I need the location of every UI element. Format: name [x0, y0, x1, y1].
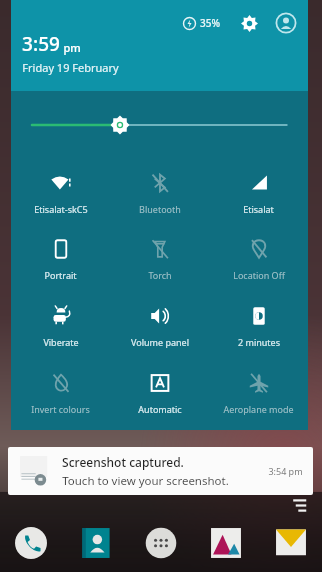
button[interactable]: Battery 35 percent charging: [181, 14, 222, 32]
staticText: Etisalat: [243, 203, 274, 215]
staticText: Viberate: [43, 336, 79, 348]
staticText: Screenshot captured.: [62, 454, 184, 470]
button[interactable]: Viberate: [11, 292, 110, 359]
staticText: 2 minutes: [238, 336, 280, 348]
button[interactable]: Phone: [10, 522, 52, 564]
button[interactable]: Portrait: [11, 225, 110, 292]
button[interactable]: Clear all notifications: [288, 495, 310, 515]
button[interactable]: Torch: [110, 225, 209, 292]
staticText: Aeroplane mode: [223, 403, 294, 415]
staticText: 35%: [200, 16, 220, 30]
staticText: Etisalat-skC5: [34, 203, 88, 215]
staticText: 3:54 pm: [268, 465, 303, 477]
button[interactable]: Invert colours: [11, 359, 110, 426]
button[interactable]: 2 minutes: [209, 292, 308, 359]
staticText: Friday 19 February: [22, 60, 119, 75]
staticText: Torch: [148, 269, 172, 281]
button[interactable]: Settings: [238, 12, 260, 34]
button[interactable]: Etisalat-skC5: [11, 159, 110, 225]
staticText: 3:59: [22, 31, 60, 57]
staticText: Portrait: [44, 269, 77, 281]
button[interactable]: Contacts: [75, 522, 117, 564]
button[interactable]: Brightness: [11, 91, 308, 159]
staticText: pm: [63, 40, 81, 55]
button[interactable]: Gallery: [205, 522, 247, 564]
button[interactable]: Automatic: [110, 359, 209, 426]
button[interactable]: Email: [270, 522, 312, 564]
button[interactable]: 3:59: [22, 31, 119, 75]
staticText: Invert colours: [31, 403, 90, 415]
button[interactable]: All apps: [140, 522, 182, 564]
button[interactable]: Etisalat: [209, 159, 308, 225]
staticText: Bluetooth: [139, 203, 181, 215]
staticText: Touch to view your screenshot.: [62, 473, 229, 489]
button[interactable]: Bluetooth: [110, 159, 209, 225]
staticText: Automatic: [138, 403, 182, 415]
button[interactable]: Volume panel: [110, 292, 209, 359]
staticText: Volume panel: [131, 336, 189, 348]
button[interactable]: Location Off: [209, 225, 308, 292]
button[interactable]: User profile: [274, 11, 298, 35]
button[interactable]: Screenshot captured.: [8, 447, 313, 495]
button[interactable]: Aeroplane mode: [209, 359, 308, 426]
staticText: Location Off: [233, 269, 285, 281]
